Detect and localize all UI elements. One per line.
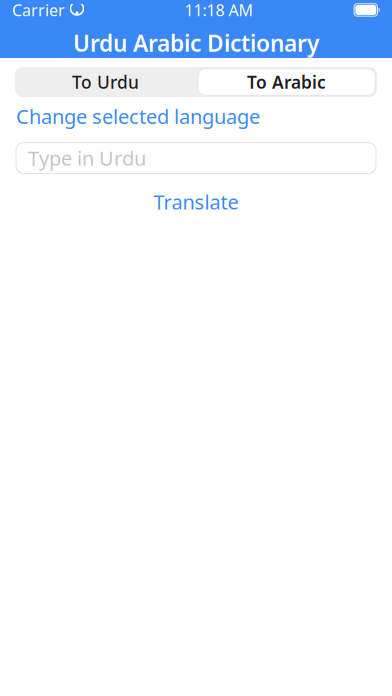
staticText: Urdu Arabic Dictionary: [73, 28, 319, 58]
staticText: Type in Urdu: [28, 145, 146, 171]
button[interactable]: Translate: [0, 183, 392, 221]
staticText: Carrier: [12, 0, 65, 20]
staticText: To Urdu: [72, 70, 139, 93]
button[interactable]: Change selected language: [0, 97, 392, 136]
staticText: Translate: [153, 189, 238, 215]
staticText: Change selected language: [16, 103, 260, 130]
button[interactable]: Type in Urdu: [0, 143, 392, 174]
button[interactable]: To Arabic: [196, 67, 377, 97]
staticText: 11:18 AM: [185, 0, 254, 20]
button[interactable]: To Urdu: [15, 67, 196, 97]
staticText: To Arabic: [247, 70, 326, 93]
